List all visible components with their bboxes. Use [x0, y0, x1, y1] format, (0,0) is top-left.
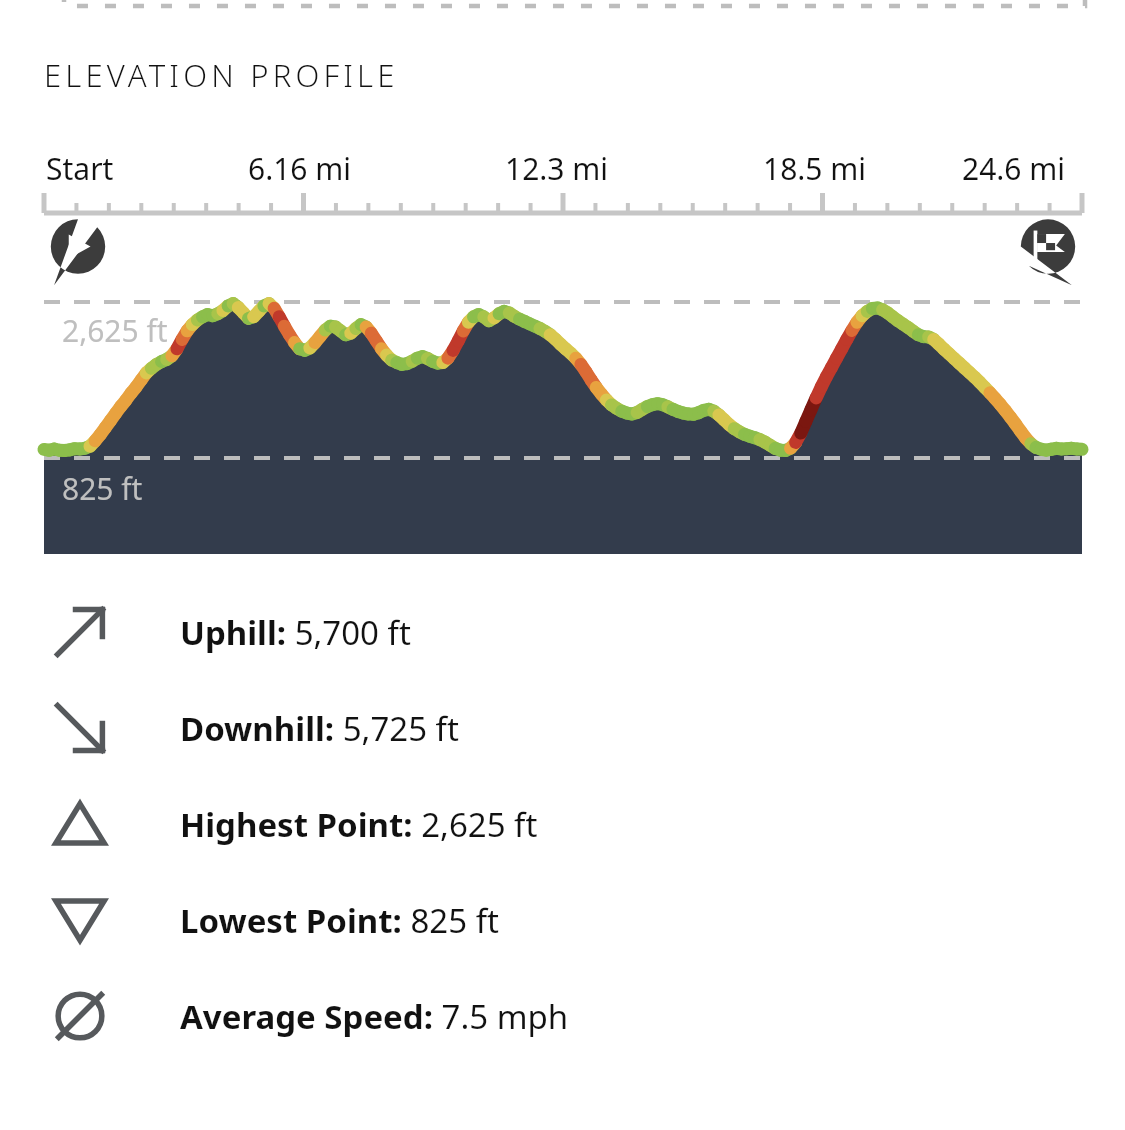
button[interactable]: Start of route [44, 218, 112, 286]
other: Downhill [52, 700, 108, 756]
staticText: ELEVATION PROFILE [44, 54, 399, 96]
other: Lowest point [52, 892, 108, 948]
other: Highest point [52, 796, 108, 852]
staticText: Start [46, 148, 114, 189]
staticText: Downhill: 5,725 ft [180, 706, 459, 751]
button[interactable]: Highest point [0, 776, 1125, 872]
staticText: 18.5 mi [763, 148, 867, 189]
button[interactable]: 2,625 ft [0, 290, 1125, 554]
staticText: 12.3 mi [505, 148, 609, 189]
button[interactable]: Finish of route [1014, 218, 1082, 286]
button[interactable]: Average speed [0, 968, 1125, 1064]
other: Average speed [52, 988, 108, 1044]
staticText: Uphill: 5,700 ft [180, 610, 411, 655]
staticText: Highest Point: 2,625 ft [180, 802, 538, 847]
staticText: Lowest Point: 825 ft [180, 898, 499, 943]
staticText: 2,625 ft [62, 310, 168, 351]
staticText: Average Speed: 7.5 mph [180, 994, 569, 1039]
staticText: 24.6 mi [962, 148, 1066, 189]
staticText: 6.16 mi [248, 148, 352, 189]
other: Uphill [52, 604, 108, 660]
staticText: 825 ft [62, 468, 143, 509]
button[interactable]: Downhill [0, 680, 1125, 776]
button[interactable]: Lowest point [0, 872, 1125, 968]
button[interactable]: Uphill [0, 584, 1125, 680]
